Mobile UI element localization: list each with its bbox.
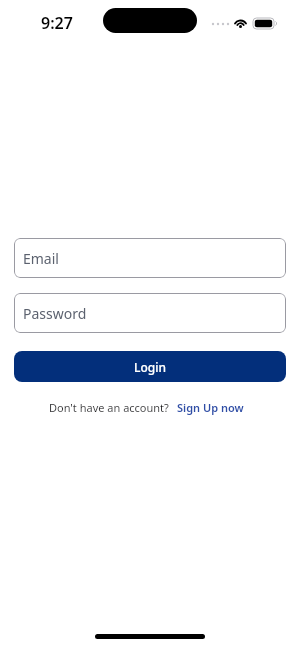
staticText: Don't have an account? [49, 400, 169, 415]
staticText: 9:27 [41, 12, 73, 34]
staticText: Password [23, 304, 87, 323]
button[interactable]: Password [14, 293, 286, 333]
button[interactable]: Email [14, 238, 286, 278]
button[interactable]: Login [14, 351, 286, 382]
staticText: Email [23, 249, 59, 268]
button[interactable]: Sign Up now [177, 400, 244, 415]
staticText: Sign Up now [177, 400, 244, 415]
staticText: Login [134, 359, 166, 375]
